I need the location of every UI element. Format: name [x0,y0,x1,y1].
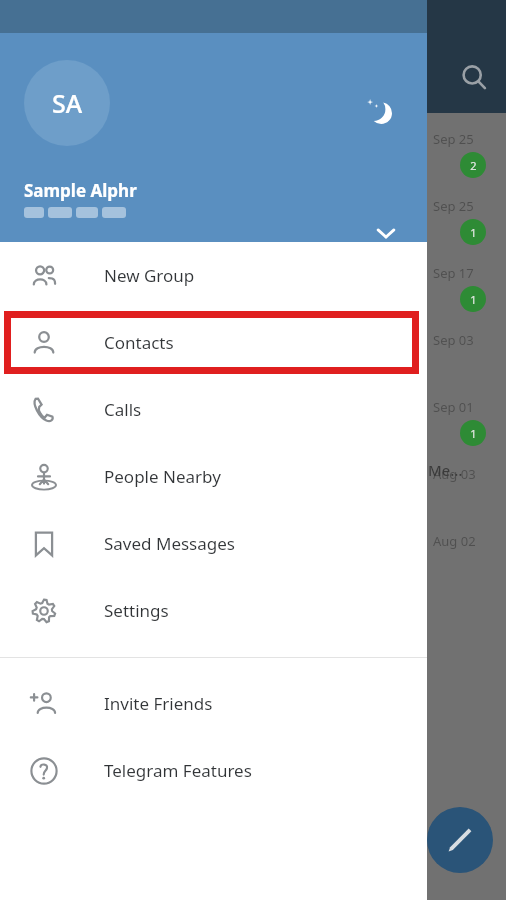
staticText: Saved Messages [104,532,235,555]
button[interactable]: Contacts [0,309,427,376]
staticText: Calls [104,398,142,421]
button[interactable]: New message [427,807,493,873]
staticText: SA [52,86,83,120]
button[interactable]: Invite Friends [0,670,427,737]
staticText: Sep 17 [433,264,474,282]
staticText: Sep 01 [433,398,474,416]
button[interactable]: Settings [0,577,427,644]
staticText: Sep 03 [433,331,474,349]
button[interactable]: People Nearby [0,443,427,510]
staticText: Telegram Features [104,759,252,782]
staticText: Ме… [428,460,463,480]
staticText: Aug 03 [433,465,476,483]
staticText: Sep 25 [433,130,474,148]
staticText: 2 [470,158,477,173]
staticText: Settings [104,599,169,622]
button[interactable]: SA [24,60,110,146]
button[interactable]: Calls [0,376,427,443]
staticText: Contacts [104,331,174,354]
staticText: Invite Friends [104,692,213,715]
staticText: People Nearby [104,465,221,488]
button[interactable]: Night mode [356,88,404,136]
staticText: Sep 25 [433,197,474,215]
button[interactable]: New Group [0,242,427,309]
button[interactable]: Telegram Features [0,737,427,804]
button[interactable]: Expand accounts [362,209,410,257]
staticText: 1 [470,292,477,307]
staticText: 1 [470,225,477,240]
staticText: New Group [104,264,195,287]
staticText: Sample Alphr [24,179,137,202]
staticText: 1 [470,426,477,441]
button[interactable]: Saved Messages [0,510,427,577]
staticText: Aug 02 [433,532,476,550]
button[interactable]: Search [455,58,493,96]
